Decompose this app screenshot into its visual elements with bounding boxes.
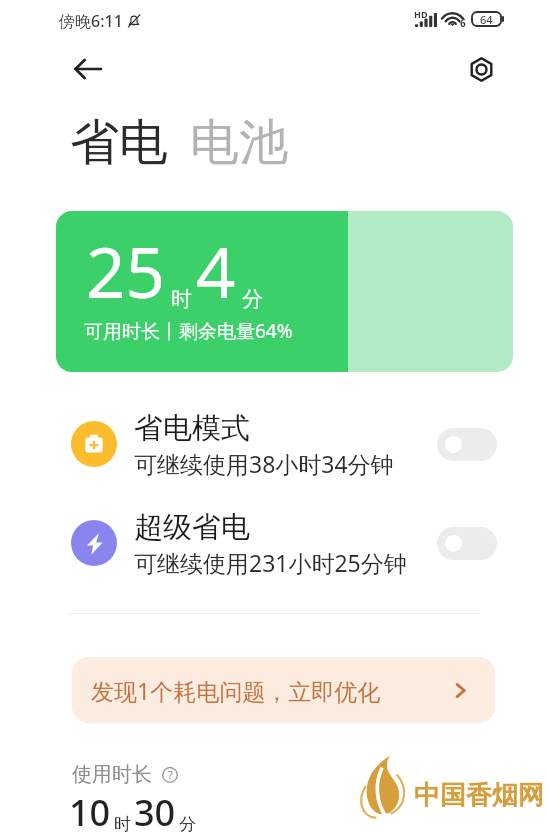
button[interactable]: Toggle 超级省电 xyxy=(437,527,497,560)
staticText: 可继续使用38小时34分钟 xyxy=(134,448,394,479)
button[interactable]: Back xyxy=(68,49,108,89)
button[interactable]: Info xyxy=(162,767,178,783)
staticText: 中国香烟网 xyxy=(414,779,544,812)
staticText: 时 xyxy=(114,814,131,834)
staticText: 25 xyxy=(86,224,165,318)
staticText: 使用时长 xyxy=(72,762,152,787)
staticText: 10 xyxy=(69,788,111,834)
button[interactable]: Toggle 省电模式 xyxy=(437,428,497,461)
staticText: 可继续使用231小时25分钟 xyxy=(134,547,407,578)
staticText: 可用时长丨剩余电量64% xyxy=(84,318,293,344)
button[interactable]: 省电 xyxy=(70,112,168,174)
staticText: 4 xyxy=(196,224,236,318)
staticText: ? xyxy=(168,767,173,782)
button[interactable]: 电池 xyxy=(190,112,288,174)
staticText: 省电 xyxy=(70,112,168,174)
staticText: 30 xyxy=(134,788,176,834)
staticText: 发现1个耗电问题，立即优化 xyxy=(91,675,381,706)
button[interactable]: 省电模式 xyxy=(56,408,513,480)
staticText: HD xyxy=(414,8,428,20)
button[interactable]: 发现1个耗电问题，立即优化 xyxy=(72,657,495,723)
button[interactable]: 超级省电 xyxy=(56,507,513,579)
staticText: 6 xyxy=(460,16,466,30)
staticText: 省电模式 xyxy=(134,410,250,447)
staticText: 电池 xyxy=(190,112,288,174)
staticText: 时 xyxy=(171,286,192,312)
staticText: 超级省电 xyxy=(134,509,250,546)
button[interactable]: 25 xyxy=(56,211,513,372)
staticText: 分 xyxy=(242,286,263,312)
staticText: 64 xyxy=(480,12,493,26)
staticText: 傍晚6:11 xyxy=(59,10,123,32)
staticText: 分 xyxy=(179,814,196,834)
button[interactable]: Settings xyxy=(461,49,501,89)
